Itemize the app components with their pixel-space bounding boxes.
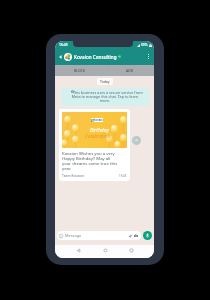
staticText: Team Kovaion — [62, 173, 85, 178]
staticText: Kovaion Wishes you a very Happy Birthday… — [62, 150, 119, 171]
staticText: Kovaion Consulting — [74, 54, 117, 60]
button[interactable]: kovaion — [59, 109, 130, 181]
button[interactable]: BLOCK — [55, 65, 104, 76]
button[interactable]: ADD — [105, 65, 154, 76]
button[interactable]: Voice message — [143, 231, 152, 240]
staticText: Message — [65, 233, 82, 238]
staticText: 16:45 — [59, 42, 68, 47]
button[interactable]: Recents — [127, 246, 135, 254]
button[interactable]: Message — [57, 231, 141, 240]
button[interactable]: More options — [145, 53, 152, 60]
staticText: 59% — [141, 43, 148, 47]
button[interactable]: Attach — [128, 234, 132, 238]
staticText: Today — [100, 79, 110, 84]
staticText: ADD — [126, 68, 134, 73]
button[interactable]: This business uses a secure service from… — [61, 88, 149, 106]
staticText: Celebration — [85, 133, 111, 140]
button[interactable]: Home — [101, 246, 109, 254]
button[interactable]: Reply — [132, 136, 141, 145]
button[interactable]: Back — [74, 246, 82, 254]
staticText: BLOCK — [74, 68, 85, 73]
staticText: kovaion — [94, 118, 103, 122]
staticText: This business uses a secure service from… — [67, 90, 143, 104]
button[interactable]: Camera — [134, 234, 138, 238]
staticText: 16:45 — [119, 174, 127, 178]
staticText: Birthday — [90, 127, 109, 134]
button[interactable]: Back — [57, 53, 64, 60]
